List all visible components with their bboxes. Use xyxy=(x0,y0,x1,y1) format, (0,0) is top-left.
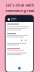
staticText: Let's chat with xyxy=(5,2,34,8)
staticText: someone great xyxy=(5,8,34,13)
